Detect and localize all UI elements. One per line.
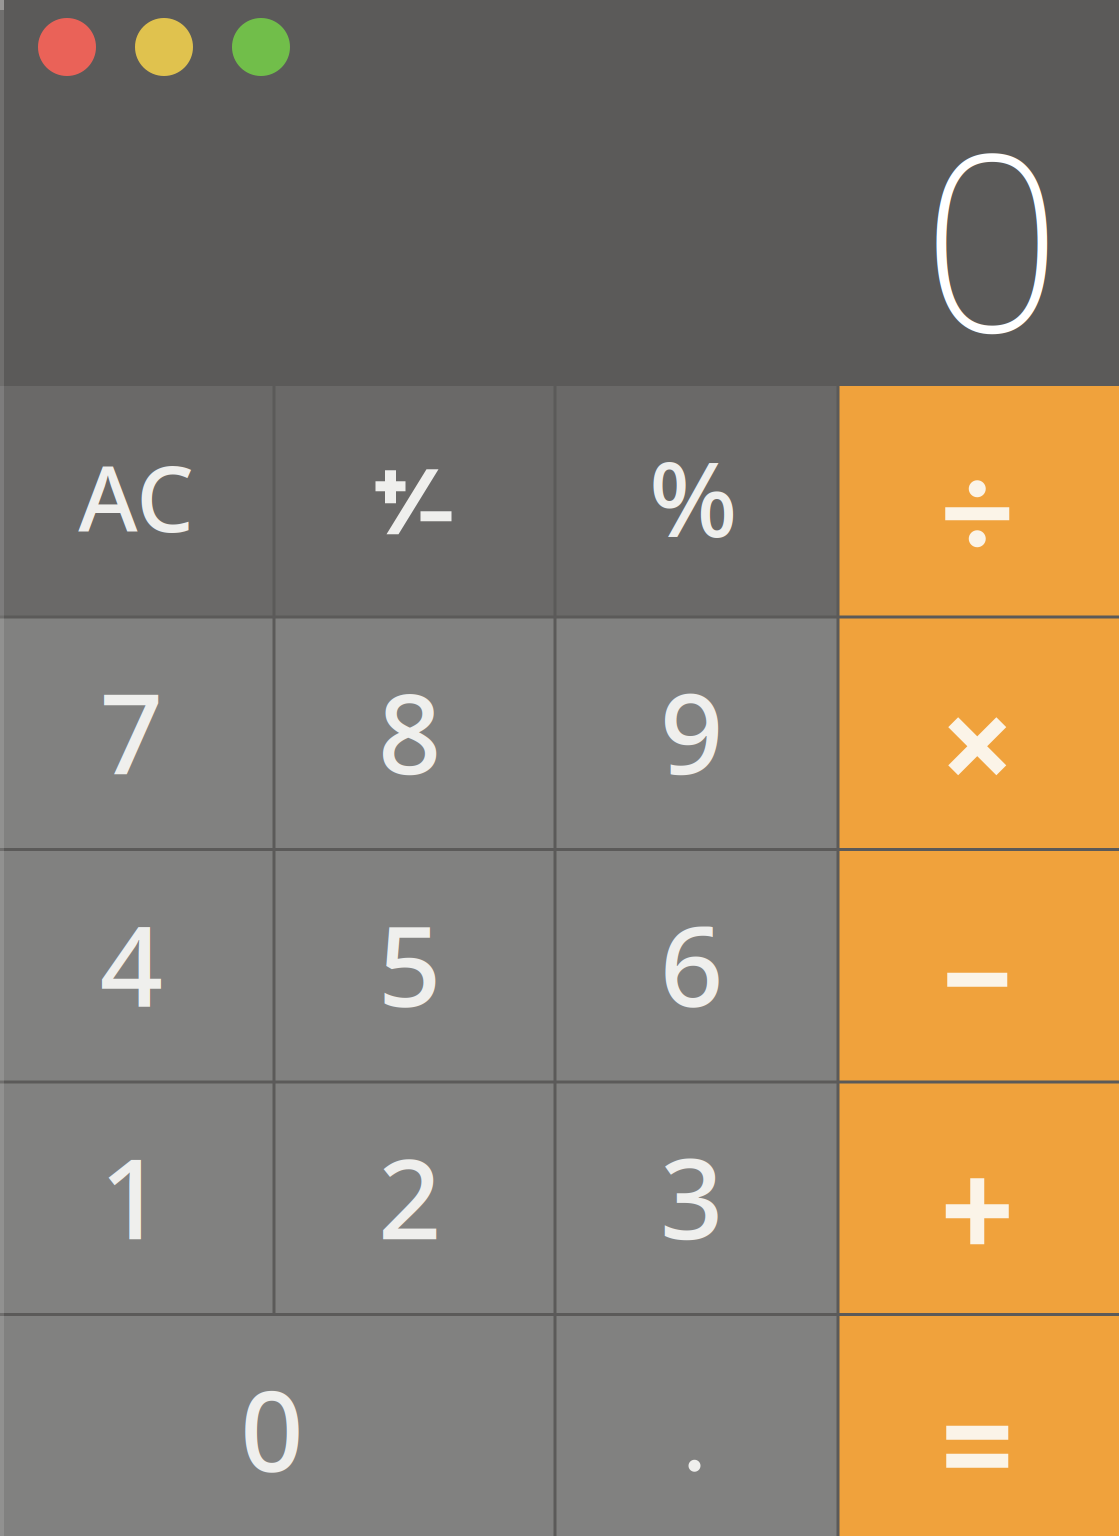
staticText: 1 xyxy=(100,1123,163,1270)
button[interactable]: 0 xyxy=(0,1316,553,1536)
button[interactable]: Minimize xyxy=(135,18,193,76)
button[interactable]: 2 xyxy=(275,1083,553,1313)
button[interactable]: Equals xyxy=(839,1316,1119,1536)
staticText: 7 xyxy=(100,658,163,805)
staticText: 6 xyxy=(660,890,723,1037)
staticText: 8 xyxy=(378,658,441,805)
staticText: 9 xyxy=(660,658,723,805)
button[interactable]: Close xyxy=(38,18,96,76)
button[interactable]: Percent xyxy=(556,386,836,615)
button[interactable]: 8 xyxy=(275,618,553,848)
button[interactable]: All Clear xyxy=(0,386,272,615)
button[interactable]: Divide xyxy=(839,386,1119,615)
button[interactable]: 5 xyxy=(275,851,553,1080)
button[interactable]: Decimal point xyxy=(556,1316,836,1536)
staticText: AC xyxy=(78,436,194,557)
button[interactable]: 4 xyxy=(0,851,272,1080)
button[interactable]: 6 xyxy=(556,851,836,1080)
button[interactable]: Plus Minus xyxy=(275,386,553,615)
staticText: 5 xyxy=(378,890,441,1037)
staticText: % xyxy=(649,428,738,566)
staticText: 0 xyxy=(922,74,1062,400)
staticText: 4 xyxy=(100,890,163,1037)
staticText: 3 xyxy=(660,1123,723,1270)
button[interactable]: 7 xyxy=(0,618,272,848)
staticText: 0 xyxy=(240,1355,303,1502)
button[interactable]: 1 xyxy=(0,1083,272,1313)
button[interactable]: Minus xyxy=(839,851,1119,1080)
button[interactable]: 3 xyxy=(556,1083,836,1313)
staticText: 2 xyxy=(378,1123,441,1270)
button[interactable]: Multiply xyxy=(839,618,1119,848)
button[interactable]: Plus xyxy=(839,1083,1119,1313)
button[interactable]: Zoom xyxy=(232,18,290,76)
button[interactable]: 9 xyxy=(556,618,836,848)
